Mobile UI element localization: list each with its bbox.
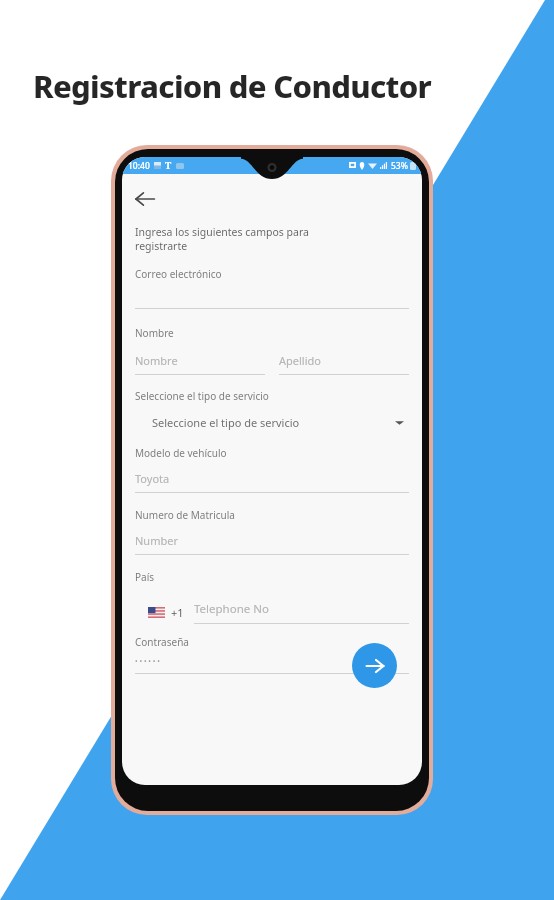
staticText: 10:40 <box>128 160 150 172</box>
staticText: T <box>165 159 172 172</box>
staticText: Nombre <box>135 326 174 340</box>
button[interactable]: Apellido <box>279 353 409 375</box>
staticText: Numero de Matricula <box>135 508 235 522</box>
staticText: Contraseña <box>135 635 189 649</box>
staticText: Registracion de Conductor <box>33 65 431 107</box>
button[interactable]: Back <box>135 183 167 215</box>
staticText: Toyota <box>135 471 170 486</box>
staticText: +1 <box>171 605 184 620</box>
staticText: Nombre <box>135 353 178 368</box>
button[interactable]: Nombre <box>135 353 265 375</box>
staticText: • • • • • • <box>135 657 160 667</box>
staticText: Telephone No <box>194 601 269 617</box>
staticText: Modelo de vehículo <box>135 446 227 460</box>
staticText: Seleccione el tipo de servicio <box>135 389 269 403</box>
button[interactable]: Continuar <box>352 643 397 688</box>
staticText: País <box>135 570 155 584</box>
button[interactable]: +1 <box>135 601 409 624</box>
staticText: Correo electrónico <box>135 267 222 281</box>
staticText: 53% <box>391 160 408 172</box>
button[interactable]: Number <box>135 533 409 555</box>
staticText: Ingresa los siguientes campos para regis… <box>135 225 309 253</box>
staticText: Number <box>135 533 178 548</box>
button[interactable]: Toyota <box>135 471 409 493</box>
button[interactable]: Seleccione el tipo de servicio <box>135 415 409 430</box>
staticText: Seleccione el tipo de servicio <box>152 415 300 430</box>
staticText: Apellido <box>279 353 321 368</box>
